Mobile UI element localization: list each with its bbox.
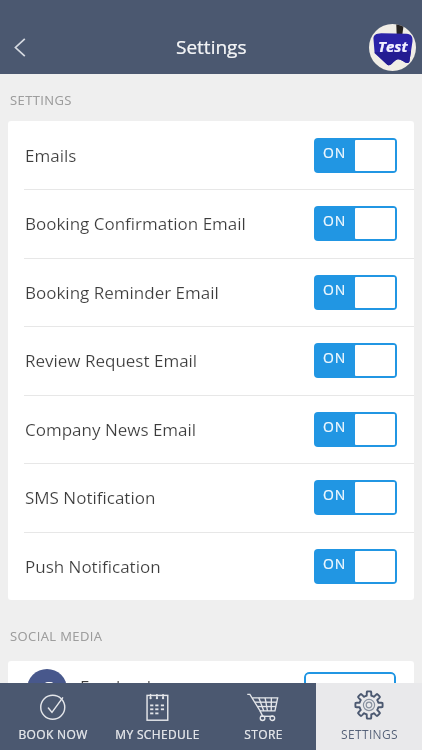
button[interactable]: Notification toggle, on [314, 412, 397, 447]
button[interactable]: Profile [369, 24, 416, 71]
staticText: Facebook [80, 675, 304, 698]
button[interactable]: SMS Notification [8, 463, 414, 532]
staticText: BOOK NOW [18, 726, 88, 742]
button[interactable]: Facebook toggle, off [304, 672, 396, 707]
button[interactable]: Emails [8, 121, 414, 189]
button[interactable]: Review Request Email [8, 326, 414, 395]
button[interactable]: Booking Reminder Email [8, 258, 414, 326]
staticText: SMS Notification [25, 486, 314, 509]
staticText: Review Request Email [25, 349, 314, 372]
staticText: Booking Reminder Email [25, 281, 314, 304]
button[interactable]: Notification toggle, on [314, 343, 397, 378]
staticText: Emails [25, 144, 314, 167]
button[interactable]: Notification toggle, on [314, 549, 397, 584]
staticText: ON [323, 211, 347, 230]
button[interactable]: MY SCHEDULE [105, 683, 210, 750]
button[interactable]: f [8, 661, 414, 717]
staticText: Settings [176, 34, 247, 60]
staticText: SETTINGS [341, 726, 398, 742]
staticText: ON [323, 280, 347, 299]
staticText: ON [323, 143, 347, 162]
button[interactable]: Push Notification [8, 532, 414, 600]
staticText: SOCIAL MEDIA [10, 627, 103, 645]
staticText: ON [323, 417, 347, 436]
staticText: ON [323, 348, 347, 367]
button[interactable]: SETTINGS [316, 683, 422, 750]
staticText: ON [323, 554, 347, 573]
staticText: Push Notification [25, 555, 314, 578]
button[interactable]: Back [0, 27, 40, 67]
button[interactable]: BOOK NOW [0, 683, 105, 750]
staticText: STORE [244, 726, 283, 742]
button[interactable]: Booking Confirmation Email [8, 189, 414, 258]
button[interactable]: Notification toggle, on [314, 138, 397, 173]
button[interactable]: Notification toggle, on [314, 480, 397, 515]
staticText: f [42, 674, 52, 707]
button[interactable]: Notification toggle, on [314, 206, 397, 241]
staticText: MY SCHEDULE [115, 726, 200, 742]
staticText: SETTINGS [10, 91, 72, 109]
staticText: Booking Confirmation Email [25, 212, 314, 235]
staticText: Company News Email [25, 418, 314, 441]
staticText: Test [378, 36, 408, 56]
staticText: ON [323, 485, 347, 504]
button[interactable]: Company News Email [8, 395, 414, 463]
button[interactable]: Notification toggle, on [314, 275, 397, 310]
button[interactable]: STORE [210, 683, 316, 750]
